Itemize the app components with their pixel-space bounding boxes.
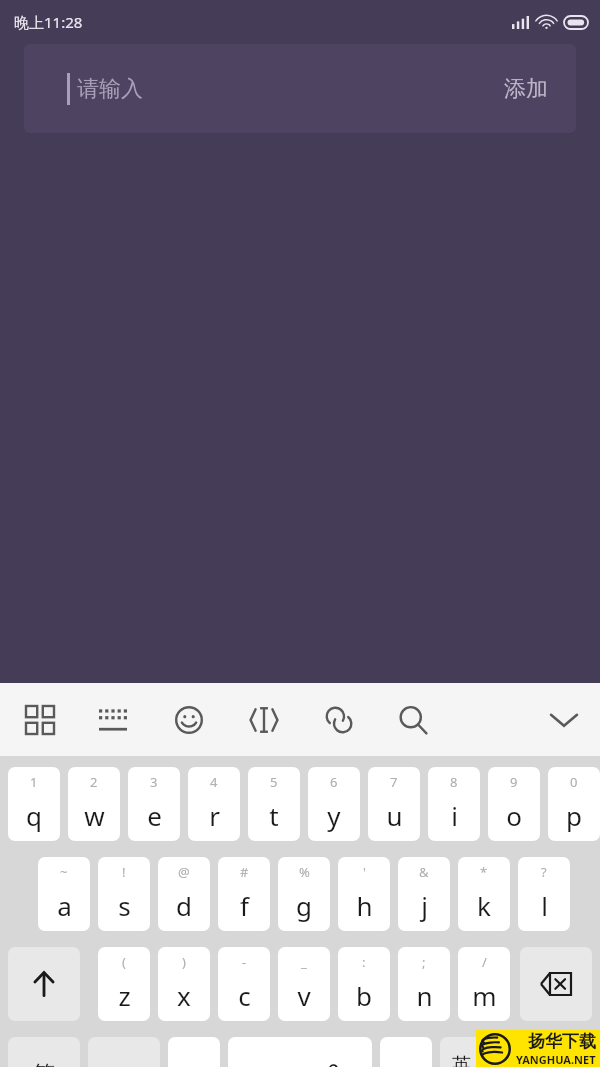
button[interactable]: 5 (248, 767, 300, 841)
staticText: h (356, 888, 373, 923)
staticText: / (482, 953, 487, 971)
staticText: - (242, 953, 247, 971)
button[interactable]: _ (278, 947, 330, 1021)
button[interactable]: Search (387, 694, 439, 746)
button[interactable]: 1 (8, 767, 60, 841)
staticText: j (421, 888, 428, 923)
button[interactable]: ) (158, 947, 210, 1021)
staticText: q (26, 798, 42, 833)
staticText: ; (422, 953, 426, 971)
staticText: y (327, 798, 341, 833)
staticText: 1 (30, 773, 38, 791)
staticText: ~ (60, 863, 68, 881)
staticText: s (118, 888, 131, 923)
button[interactable]: ( (98, 947, 150, 1021)
staticText: YANGHUA.NET (516, 1052, 596, 1067)
staticText: b (356, 978, 372, 1013)
staticText: m (472, 978, 497, 1013)
button[interactable]: % (278, 857, 330, 931)
staticText: ! (122, 863, 126, 881)
staticText: 3 (150, 773, 158, 791)
staticText: * (480, 863, 488, 881)
button[interactable]: @ (158, 857, 210, 931)
staticText: 符 (33, 1060, 55, 1067)
staticText: ' (363, 863, 366, 881)
button[interactable]: Panels (14, 694, 66, 746)
button[interactable]: Switch language (440, 1037, 512, 1067)
button[interactable]: 0 (548, 767, 600, 841)
staticText: v (297, 978, 311, 1013)
button[interactable]: Enter (520, 1037, 592, 1067)
staticText: 4 (210, 773, 218, 791)
button[interactable]: 请输入 (24, 44, 576, 133)
staticText: e (147, 798, 162, 833)
button[interactable]: & (398, 857, 450, 931)
staticText: @ (178, 863, 190, 881)
button[interactable]: 4 (188, 767, 240, 841)
staticText: 添加 (504, 75, 548, 103)
button[interactable]: 6 (308, 767, 360, 841)
staticText: ) (182, 953, 186, 971)
staticText: ? (541, 863, 547, 881)
staticText: 晚上11:28 (14, 12, 83, 32)
button[interactable]: Clipboard (313, 694, 365, 746)
button[interactable]: Shift (8, 947, 80, 1021)
button[interactable]: Emoji (163, 694, 215, 746)
button[interactable]: 3 (128, 767, 180, 841)
staticText: & (419, 863, 429, 881)
staticText: _ (301, 953, 307, 971)
staticText: z (118, 978, 131, 1013)
staticText: r (209, 798, 220, 833)
button[interactable]: 8 (428, 767, 480, 841)
staticText: n (416, 978, 433, 1013)
staticText: 0 (570, 773, 578, 791)
button[interactable]: 9 (488, 767, 540, 841)
button[interactable]: Hide keyboard (538, 694, 590, 746)
staticText: 2 (90, 773, 98, 791)
button[interactable]: , (168, 1037, 220, 1067)
staticText: 8 (450, 773, 458, 791)
button[interactable]: ? (518, 857, 570, 931)
staticText: w (84, 798, 105, 833)
button[interactable]: Keyboard layout (87, 694, 139, 746)
button[interactable]: ' (338, 857, 390, 931)
button[interactable]: ! (98, 857, 150, 931)
button[interactable]: . (380, 1037, 432, 1067)
button[interactable]: - (218, 947, 270, 1021)
staticText: k (477, 888, 491, 923)
button[interactable]: 符 (8, 1037, 80, 1067)
staticText: 9 (510, 773, 518, 791)
button[interactable]: Space (228, 1037, 372, 1067)
staticText: c (238, 978, 251, 1013)
button[interactable]: : (338, 947, 390, 1021)
button[interactable]: 7 (368, 767, 420, 841)
staticText: u (386, 798, 403, 833)
button[interactable]: ; (398, 947, 450, 1021)
staticText: 英 (452, 1053, 471, 1067)
staticText: 请输入 (77, 75, 143, 103)
staticText: 6 (330, 773, 338, 791)
staticText: i (451, 798, 458, 833)
button[interactable]: # (218, 857, 270, 931)
button[interactable]: * (458, 857, 510, 931)
staticText: d (176, 888, 192, 923)
staticText: a (57, 888, 72, 923)
button[interactable]: ~ (38, 857, 90, 931)
staticText: : (362, 953, 366, 971)
staticText: 扬华下载 (528, 1031, 596, 1052)
button[interactable]: / (458, 947, 510, 1021)
button[interactable]: Text editing (238, 694, 290, 746)
button[interactable]: Backspace (520, 947, 592, 1021)
staticText: ( (122, 953, 126, 971)
staticText: % (299, 863, 310, 881)
staticText: l (541, 888, 548, 923)
staticText: p (566, 798, 582, 833)
button[interactable]: 添加 (504, 75, 548, 103)
staticText: # (240, 863, 249, 881)
button[interactable]: 2 (68, 767, 120, 841)
